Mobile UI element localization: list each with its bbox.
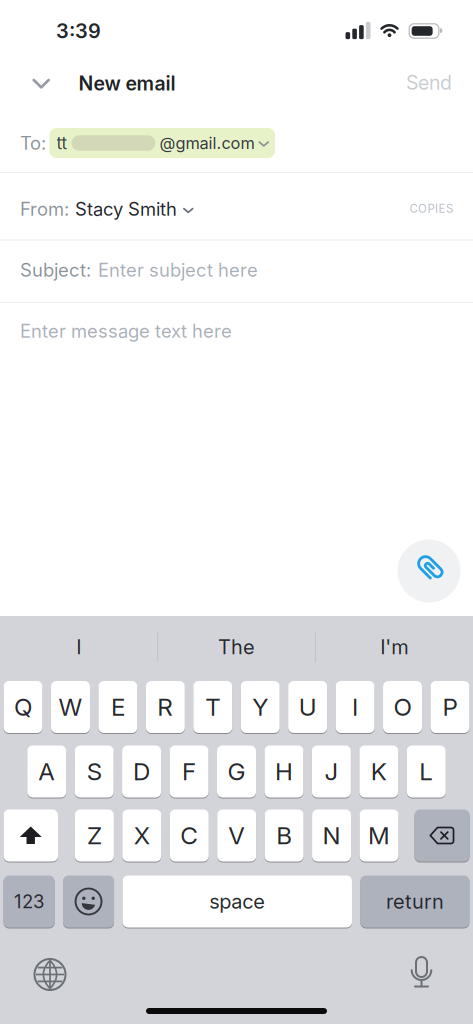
button[interactable]: 123 [4,875,55,928]
button[interactable]: A [27,745,66,798]
button[interactable]: Next keyboard [34,959,65,990]
button[interactable]: V [217,809,256,862]
button[interactable]: COPIES [409,202,453,215]
button[interactable]: E [98,680,137,733]
staticText: G [227,757,245,786]
staticText: R [157,692,173,722]
button[interactable]: O [383,680,422,733]
staticText: Send [406,71,452,94]
staticText: Z [87,821,102,850]
button[interactable]: tt [49,128,275,158]
button[interactable]: Attach file [397,539,460,602]
button[interactable]: I [9,625,149,669]
staticText: From: [20,198,69,220]
staticText: I'm [380,635,408,659]
button[interactable]: I [336,680,375,733]
staticText: A [38,757,55,786]
staticText: New email [78,72,175,95]
staticText: S [87,757,102,786]
staticText: N [323,821,341,850]
button[interactable]: I'm [324,625,464,669]
button[interactable]: C [170,809,209,862]
button[interactable]: F [170,745,209,798]
staticText: B [276,821,292,850]
staticText: space [209,889,265,914]
button[interactable]: J [312,745,351,798]
staticText: L [419,757,433,786]
button[interactable]: U [288,680,327,733]
staticText: E [111,692,125,722]
staticText: O [393,692,411,722]
button[interactable]: P [430,680,469,733]
staticText: D [133,757,150,786]
staticText: The [218,635,255,659]
button[interactable]: The [166,625,306,669]
staticText: COPIES [409,202,453,215]
button[interactable]: Z [75,809,114,862]
staticText: Q [14,692,32,722]
staticText: V [228,821,245,850]
staticText: F [182,757,196,786]
staticText: Y [252,692,268,722]
button[interactable]: Delete [414,809,469,862]
staticText: Stacy Smith [75,198,177,220]
button[interactable]: S [75,745,114,798]
staticText: T [205,692,220,722]
staticText: @gmail.com [159,133,254,153]
staticText: U [299,692,317,722]
button[interactable]: D [122,745,161,798]
button[interactable]: space [122,875,352,928]
button[interactable]: M [359,809,398,862]
staticText: P [442,692,457,722]
button[interactable]: Y [241,680,280,733]
button[interactable]: Emoji [63,875,114,928]
staticText: 3:39 [56,19,101,43]
button[interactable]: X [122,809,161,862]
staticText: I [76,635,81,659]
button[interactable]: Q [3,680,42,733]
button[interactable]: R [146,680,185,733]
button[interactable]: Send [406,71,452,94]
staticText: Subject: [20,259,91,281]
button[interactable]: Shift [3,809,58,862]
staticText: return [386,889,444,914]
staticText: H [275,757,293,786]
staticText: Enter subject here [98,259,258,281]
button[interactable]: return [360,875,469,928]
staticText: W [58,692,82,722]
button[interactable]: K [359,745,398,798]
staticText: I [352,692,358,722]
button[interactable]: B [265,809,304,862]
button[interactable]: N [312,809,351,862]
staticText: tt [56,133,67,153]
staticText: C [180,821,198,850]
button[interactable]: L [407,745,446,798]
staticText: 123 [14,890,44,913]
button[interactable]: W [51,680,90,733]
button[interactable]: Dictate [409,957,433,990]
button[interactable]: T [193,680,232,733]
staticText: Enter message text here [20,320,232,342]
button[interactable]: G [217,745,256,798]
staticText: K [371,757,387,786]
button[interactable]: Minimize [24,71,58,97]
staticText: J [324,757,338,786]
button[interactable]: H [264,745,303,798]
staticText: To: [20,132,46,154]
staticText: X [134,821,150,850]
staticText: M [368,821,390,850]
